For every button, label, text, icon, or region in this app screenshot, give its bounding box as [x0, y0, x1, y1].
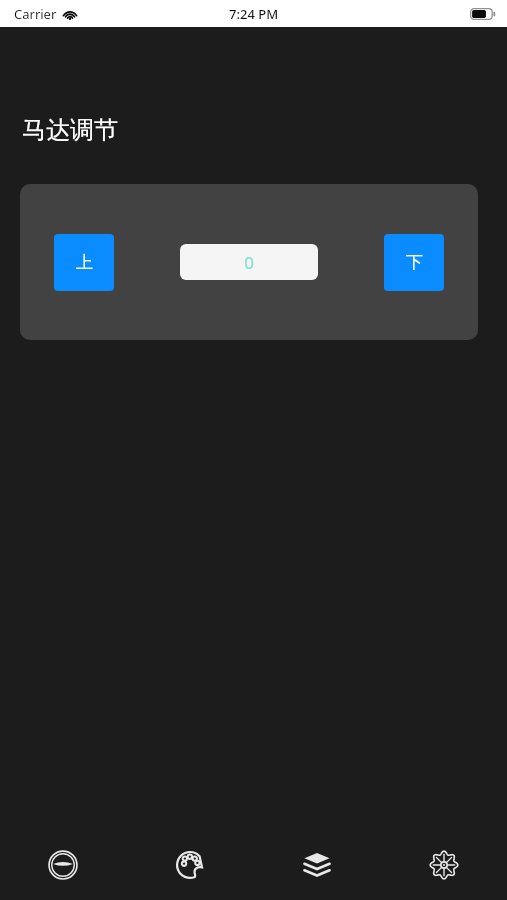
staticText: Carrier [14, 5, 57, 23]
button[interactable]: 0 [180, 244, 318, 280]
staticText: 下 [406, 252, 423, 273]
button[interactable]: Palette [126, 828, 253, 900]
button[interactable]: 上 [54, 234, 114, 291]
button[interactable]: Nozzle [0, 828, 126, 900]
button[interactable]: Settings [380, 828, 507, 900]
button[interactable]: 下 [384, 234, 444, 291]
staticText: 0 [244, 251, 254, 274]
staticText: 7:24 PM [229, 5, 279, 23]
staticText: 上 [76, 252, 93, 273]
staticText: 马达调节 [22, 115, 118, 145]
button[interactable]: Layers [253, 828, 380, 900]
